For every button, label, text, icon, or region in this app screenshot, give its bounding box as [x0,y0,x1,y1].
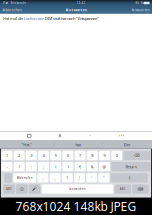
button[interactable]: " [98,173,109,183]
button[interactable]: 1 [1,151,12,160]
button[interactable]: Bold [59,133,62,138]
button[interactable]: ; [38,162,49,171]
button[interactable]: ' [86,173,97,183]
staticText: ? [66,175,68,180]
button[interactable]: ABC [115,184,131,194]
staticText: DIVI stuft hat noch "Entspannen" [44,16,99,21]
staticText: "Hat" [21,142,32,147]
staticText: , [55,175,56,180]
staticText: 7 [79,153,81,158]
staticText: € [79,164,81,169]
staticText: 🎤 [32,187,37,191]
button[interactable]: Return [111,162,151,171]
button[interactable]: : [26,162,37,171]
staticText: ! [79,175,80,180]
button[interactable]: More options [118,133,124,138]
staticText: 768x1024 148kb JPEG [15,198,136,214]
button[interactable]: 3 [26,151,37,160]
staticText: Widerrufen [17,176,33,180]
staticText: Abbrechen [2,7,21,12]
button[interactable]: Leerzeichen [42,184,113,194]
staticText: - [6,164,7,169]
staticText: 13:42 [76,1,85,5]
button[interactable]: ! [74,173,85,183]
button[interactable]: 4 [38,151,49,160]
staticText: 9 [103,153,105,158]
button[interactable]: ⇧ [111,173,148,183]
staticText: ABC [6,187,12,191]
button[interactable]: 6 [62,151,73,160]
button[interactable]: . [37,173,48,183]
staticText: / [19,164,20,169]
button[interactable]: 5 [50,151,61,160]
staticText: ; [43,164,44,169]
button[interactable]: 2 [14,151,25,160]
staticText: Lockscreen [24,16,44,21]
button[interactable]: ABC [3,184,15,194]
button[interactable]: € [75,162,86,171]
button[interactable]: Der [124,142,131,147]
staticText: & [91,164,94,169]
staticText: ⌨ [138,187,144,191]
button[interactable]: ) [62,162,73,171]
staticText: Hat mal die [3,16,24,21]
staticText: ⇧ [128,176,131,180]
staticText: ☺ [20,187,24,191]
button[interactable]: Abbrechen [0,6,24,14]
button[interactable]: ☺ [16,184,28,194]
staticText: 6 [67,153,69,158]
button[interactable]: "Hat" [21,142,32,147]
staticText: 8 [91,153,93,158]
button[interactable]: / [14,162,25,171]
staticText: iPad Telekom.de [2,1,26,5]
staticText: @ [102,164,106,169]
staticText: 86 % [135,1,142,5]
button[interactable]: hat [75,142,80,147]
button[interactable]: 8 [87,151,98,160]
staticText: Antworten [131,7,149,12]
button[interactable]: ? [62,173,73,183]
staticText: ~ [89,133,91,138]
button[interactable]: Emoji [89,133,91,138]
button[interactable]: & [87,162,98,171]
staticText: hat [75,142,80,147]
staticText: ( [55,164,56,169]
staticText: Der [124,142,131,147]
staticText: 4 [42,153,44,158]
staticText: ' [91,175,92,180]
staticText: 3 [30,153,32,158]
button[interactable]: , [50,173,61,183]
button[interactable] [4,173,12,183]
staticText: Return [125,164,136,169]
staticText: ) [67,164,68,169]
staticText: 2 [18,153,20,158]
button[interactable]: Insert image [27,134,31,137]
staticText: Leerzeichen [69,187,86,191]
button[interactable]: ( [50,162,61,171]
button[interactable]: Widerrufen [13,173,36,183]
staticText: " [103,175,105,180]
staticText: ••• [118,133,124,138]
button[interactable]: ⌫ [123,151,151,160]
button[interactable]: 0 [111,151,122,160]
staticText: 1 [6,153,8,158]
staticText: B [59,133,62,138]
staticText: ⌫ [134,153,140,158]
staticText: : [31,164,32,169]
button[interactable]: Antworten [129,6,152,14]
button[interactable]: - [1,162,12,171]
button[interactable]: 7 [75,151,86,160]
button[interactable]: 🎤 [29,184,40,194]
staticText: 0 [116,153,118,158]
staticText: ABC [120,187,126,191]
staticText: . [42,175,43,180]
button[interactable]: @ [99,162,110,171]
button[interactable]: ⌨ [132,184,149,194]
staticText: 5 [55,153,57,158]
button[interactable]: 9 [99,151,110,160]
staticText: Antworten [65,7,87,12]
